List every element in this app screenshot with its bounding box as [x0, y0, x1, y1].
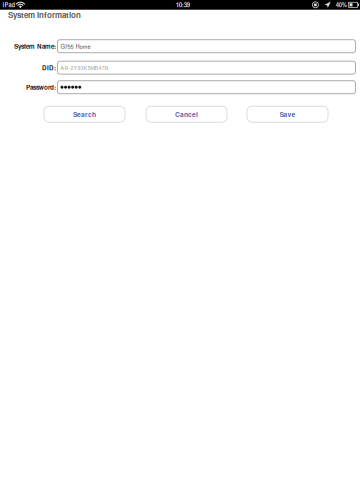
button[interactable]: Search: [44, 106, 125, 122]
staticText: Password:: [26, 83, 56, 92]
staticText: Cancel: [175, 109, 198, 119]
button[interactable]: Save: [247, 106, 328, 122]
staticText: G755 Home: [60, 42, 90, 50]
button[interactable]: Cancel: [146, 106, 227, 122]
staticText: 10:39: [176, 0, 190, 9]
staticText: AR-2Y93K5MB47N: [60, 64, 108, 71]
staticText: DID:: [42, 63, 56, 72]
staticText: System Name:: [14, 42, 56, 51]
staticText: Save: [279, 109, 295, 119]
staticText: 40%: [336, 1, 347, 9]
staticText: iPad: [2, 1, 15, 9]
staticText: Search: [73, 109, 96, 119]
staticText: System Information: [8, 9, 81, 20]
